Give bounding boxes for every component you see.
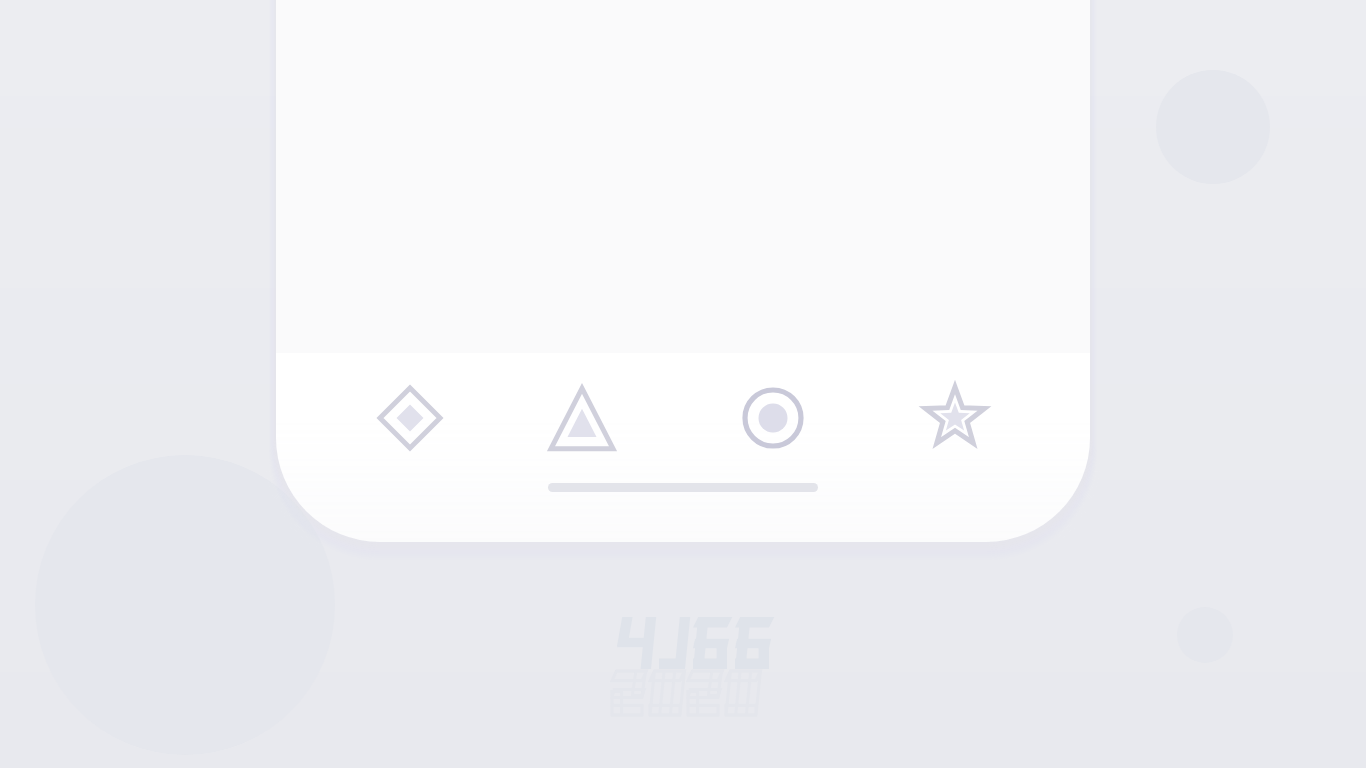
button[interactable]: Explore [366, 374, 454, 462]
button[interactable]: Record [729, 374, 817, 462]
button[interactable]: Favorites [911, 374, 999, 462]
button[interactable]: Trends [538, 374, 626, 462]
